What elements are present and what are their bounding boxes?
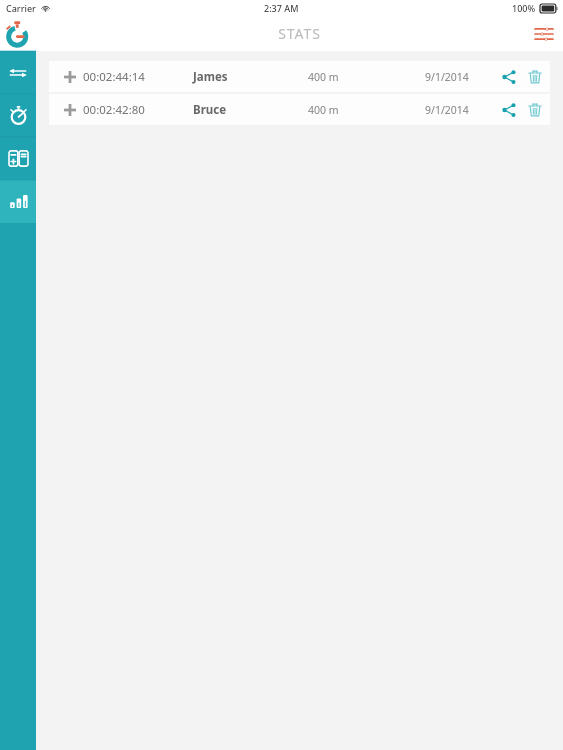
button[interactable]: Expand (49, 61, 550, 92)
button[interactable]: Share (496, 64, 522, 90)
button[interactable]: Stopwatch (0, 94, 36, 137)
button[interactable]: Expand (49, 94, 550, 125)
staticText: 9/1/2014 (425, 103, 496, 117)
staticText: 100% (512, 2, 536, 14)
button[interactable]: Stats (0, 180, 36, 223)
staticText: 400 m (308, 103, 425, 117)
button[interactable]: App logo (0, 16, 36, 51)
staticText: Carrier (6, 2, 36, 14)
button[interactable]: Expand (60, 100, 80, 120)
staticText: 400 m (308, 70, 425, 84)
button[interactable]: Delete (522, 97, 548, 123)
staticText: James (193, 69, 308, 85)
staticText: STATS (278, 24, 321, 43)
button[interactable]: Intervals (0, 51, 36, 94)
button[interactable]: Share (496, 97, 522, 123)
button[interactable]: Expand (60, 67, 80, 87)
staticText: 2:37 AM (264, 2, 299, 14)
button[interactable]: Delete (522, 64, 548, 90)
button[interactable]: Calculator (0, 137, 36, 180)
button[interactable]: Settings (525, 16, 563, 51)
staticText: Bruce (193, 102, 308, 118)
staticText: 00:02:42:80 (83, 102, 193, 118)
staticText: 9/1/2014 (425, 70, 496, 84)
staticText: 00:02:44:14 (83, 69, 193, 85)
